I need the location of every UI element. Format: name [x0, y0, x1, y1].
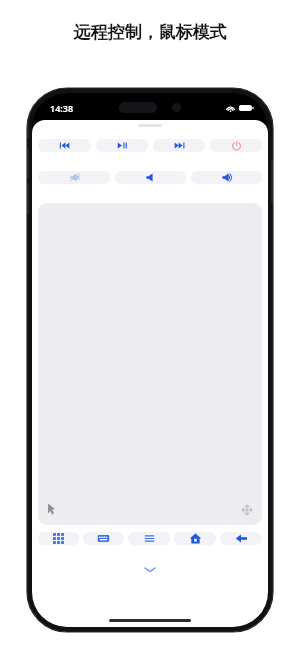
button[interactable]: Menu — [128, 532, 170, 545]
staticText: 14:38 — [50, 102, 74, 114]
button[interactable]: Collapse — [142, 565, 158, 574]
button[interactable]: Previous track — [38, 139, 91, 152]
button[interactable]: Next track — [153, 139, 205, 152]
button[interactable]: Keyboard — [83, 532, 124, 545]
button[interactable]: Home — [174, 532, 216, 545]
button[interactable]: Play or pause — [96, 139, 148, 152]
other: Move — [241, 504, 253, 516]
button[interactable]: Back — [220, 532, 262, 545]
button[interactable]: Mute — [38, 171, 110, 184]
button[interactable]: Power — [210, 139, 262, 152]
button[interactable]: Apps — [38, 532, 79, 545]
staticText: 远程控制，鼠标模式 — [0, 22, 300, 43]
button[interactable]: Volume up — [191, 171, 262, 184]
button[interactable]: Volume down — [115, 171, 186, 184]
